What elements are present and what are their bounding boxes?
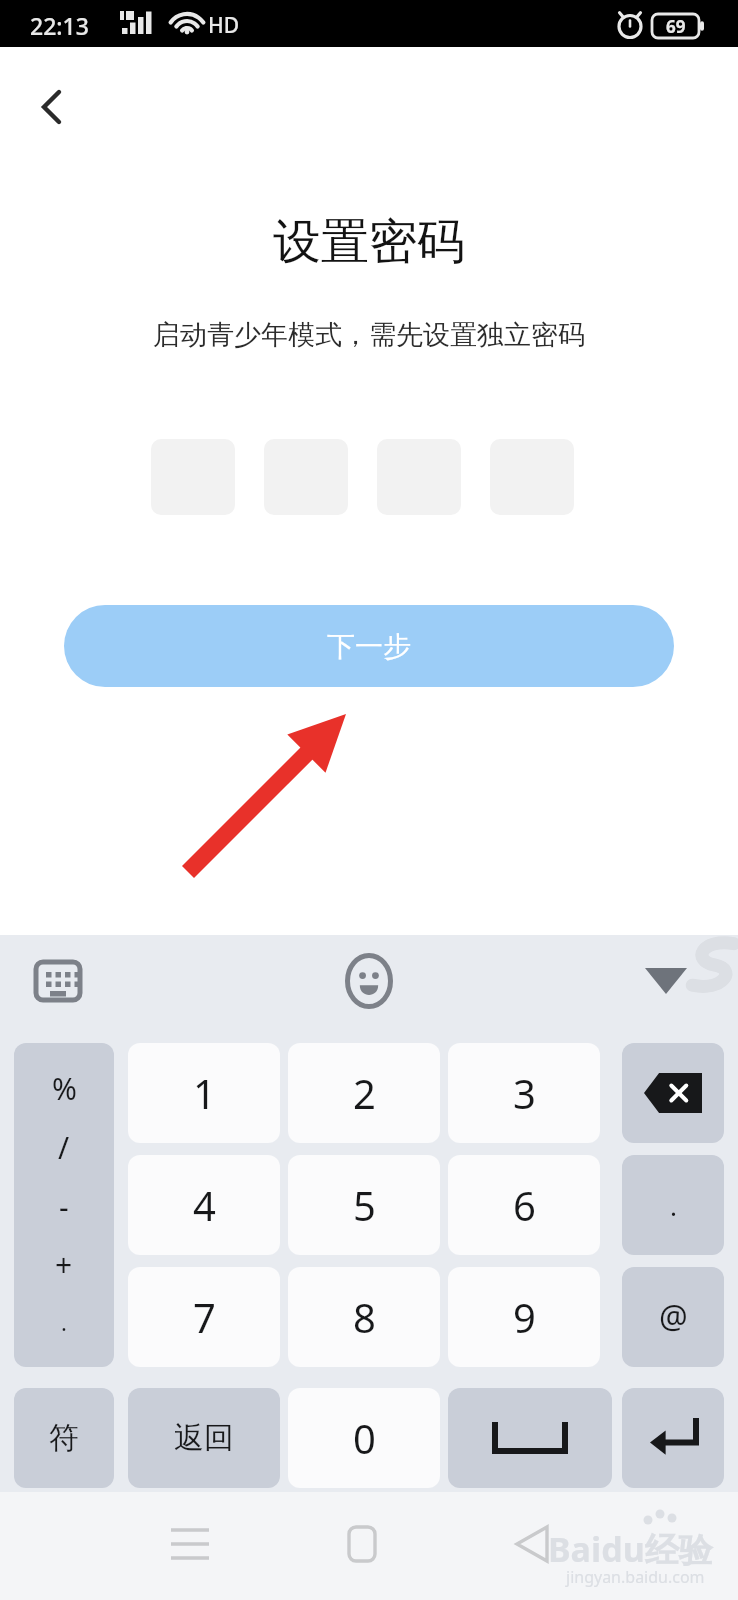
- button[interactable]: 6: [448, 1155, 600, 1255]
- staticText: +: [55, 1244, 73, 1285]
- staticText: Baidu经验: [548, 1526, 713, 1572]
- button[interactable]: Symbols percent slash minus plus dot: [14, 1043, 114, 1367]
- button[interactable]: Enter: [622, 1388, 724, 1488]
- button[interactable]: 返回: [128, 1388, 280, 1488]
- button[interactable]: 5: [288, 1155, 440, 1255]
- staticText: 符: [49, 1419, 79, 1457]
- button[interactable]: Emoji: [333, 946, 405, 1016]
- button[interactable]: 3: [448, 1043, 600, 1143]
- button[interactable]: 2: [288, 1043, 440, 1143]
- button[interactable]: 1: [128, 1043, 280, 1143]
- staticText: 3: [513, 1066, 536, 1120]
- staticText: 下一步: [327, 629, 411, 664]
- button[interactable]: Hide keyboard: [634, 953, 698, 1009]
- button[interactable]: Switch keyboard: [22, 948, 94, 1014]
- staticText: 9: [513, 1290, 536, 1344]
- staticText: /: [58, 1127, 70, 1168]
- button[interactable]: Back: [18, 76, 80, 138]
- staticText: 设置密码: [0, 212, 738, 272]
- staticText: 7: [193, 1290, 216, 1344]
- button[interactable]: Recents: [150, 1504, 230, 1584]
- staticText: HD: [208, 11, 240, 40]
- staticText: jingyan.baidu.com: [566, 1566, 705, 1588]
- staticText: 69: [666, 15, 686, 38]
- staticText: 1: [193, 1066, 216, 1120]
- staticText: .: [61, 1307, 67, 1337]
- button[interactable]: 4: [128, 1155, 280, 1255]
- staticText: 0: [353, 1411, 376, 1465]
- button[interactable]: 7: [128, 1267, 280, 1367]
- staticText: %: [52, 1068, 77, 1109]
- staticText: 6: [513, 1178, 536, 1232]
- button[interactable]: 9: [448, 1267, 600, 1367]
- button[interactable]: 下一步: [64, 605, 674, 687]
- button[interactable]: Home: [322, 1504, 402, 1584]
- button[interactable]: 符: [14, 1388, 114, 1488]
- button[interactable]: .: [622, 1155, 724, 1255]
- button[interactable]: 0: [288, 1388, 440, 1488]
- staticText: @: [659, 1295, 688, 1339]
- staticText: 2: [353, 1066, 376, 1120]
- button[interactable]: 8: [288, 1267, 440, 1367]
- button[interactable]: Backspace: [622, 1043, 724, 1143]
- button[interactable]: Space: [448, 1388, 612, 1488]
- staticText: -: [59, 1186, 69, 1227]
- staticText: 5: [353, 1178, 376, 1232]
- staticText: 4: [193, 1178, 216, 1232]
- button[interactable]: @: [622, 1267, 724, 1367]
- staticText: 启动青少年模式，需先设置独立密码: [0, 318, 738, 352]
- staticText: 22:13: [30, 10, 89, 41]
- button[interactable]: Back: [492, 1504, 572, 1584]
- staticText: .: [670, 1188, 677, 1223]
- staticText: 8: [353, 1290, 376, 1344]
- staticText: 返回: [174, 1419, 234, 1457]
